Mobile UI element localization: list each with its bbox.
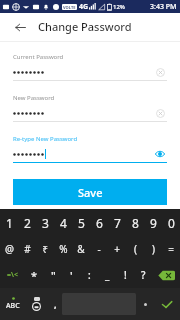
staticText: -: [97, 242, 101, 256]
staticText: 4G: [79, 2, 89, 12]
button[interactable]: 1: [0, 209, 18, 236]
staticText: Current Password: [13, 53, 64, 61]
button[interactable]: 6: [90, 209, 108, 236]
staticText: =\<: [7, 270, 18, 280]
button[interactable]: Emoji: [25, 288, 48, 320]
button[interactable]: &: [72, 236, 90, 262]
staticText: Re-type New Password: [13, 135, 78, 143]
staticText: 0: [168, 215, 175, 231]
staticText: (: [134, 242, 137, 256]
staticText: :: [88, 268, 91, 282]
staticText: Save: [78, 185, 103, 200]
staticText: 3: [42, 215, 49, 231]
staticText: 12%: [113, 3, 125, 11]
staticText: ): [152, 242, 155, 256]
button[interactable]: ₹: [36, 236, 54, 262]
staticText: ?: [141, 268, 146, 282]
button[interactable]: ?: [134, 262, 152, 288]
button[interactable]: 9: [144, 209, 162, 236]
staticText: 8: [132, 215, 139, 231]
staticText: 9: [150, 215, 157, 231]
staticText: &: [77, 242, 85, 256]
button[interactable]: Backspace: [152, 262, 180, 288]
button[interactable]: Save: [13, 179, 167, 205]
staticText: #: [24, 242, 31, 256]
staticText: @: [5, 242, 14, 256]
staticText: 5: [78, 215, 85, 231]
button[interactable]: _: [98, 262, 116, 288]
button[interactable]: :: [80, 262, 98, 288]
button[interactable]: =\<: [0, 262, 25, 288]
staticText: Change Password: [38, 19, 132, 34]
button[interactable]: (: [126, 236, 144, 262]
button[interactable]: 2: [18, 209, 36, 236]
staticText: ,: [54, 298, 57, 310]
staticText: 7: [114, 215, 121, 231]
button[interactable]: @: [0, 236, 18, 262]
button[interactable]: 7: [108, 209, 126, 236]
button[interactable]: *: [25, 262, 44, 288]
staticText: 3:43 PM: [150, 2, 177, 12]
staticText: !: [124, 268, 127, 282]
staticText: New Password: [13, 94, 55, 102]
button[interactable]: =: [162, 236, 180, 262]
staticText: +: [114, 242, 120, 256]
button[interactable]: #: [18, 236, 36, 262]
button[interactable]: Clear: [153, 107, 167, 119]
button[interactable]: 0: [162, 209, 180, 236]
staticText: ': [70, 268, 73, 283]
button[interactable]: ': [62, 262, 80, 288]
button[interactable]: Enter: [154, 288, 180, 320]
staticText: _: [105, 268, 110, 282]
button[interactable]: [136, 288, 154, 320]
button[interactable]: 4: [54, 209, 72, 236]
button[interactable]: Show password: [153, 148, 167, 160]
button[interactable]: Clear: [153, 66, 167, 78]
staticText: 4: [60, 215, 67, 231]
staticText: 1: [6, 215, 13, 231]
button[interactable]: ): [144, 236, 162, 262]
staticText: 2: [24, 215, 31, 231]
button[interactable]: %: [54, 236, 72, 262]
staticText: ABC: [6, 301, 20, 311]
button[interactable]: Back: [10, 17, 30, 37]
button[interactable]: 3: [36, 209, 54, 236]
button[interactable]: -: [90, 236, 108, 262]
button[interactable]: ": [44, 262, 62, 288]
button[interactable]: !: [116, 262, 134, 288]
staticText: %: [59, 242, 68, 256]
staticText: 6: [96, 215, 103, 231]
staticText: =: [168, 242, 174, 256]
staticText: VOLTE: [63, 5, 76, 10]
staticText: ₹: [42, 242, 48, 256]
button[interactable]: ABC: [0, 288, 25, 320]
button[interactable]: +: [108, 236, 126, 262]
button[interactable]: ,: [48, 288, 62, 320]
staticText: *: [31, 268, 38, 283]
button[interactable]: 8: [126, 209, 144, 236]
staticText: ": [51, 268, 56, 283]
button[interactable]: 5: [72, 209, 90, 236]
